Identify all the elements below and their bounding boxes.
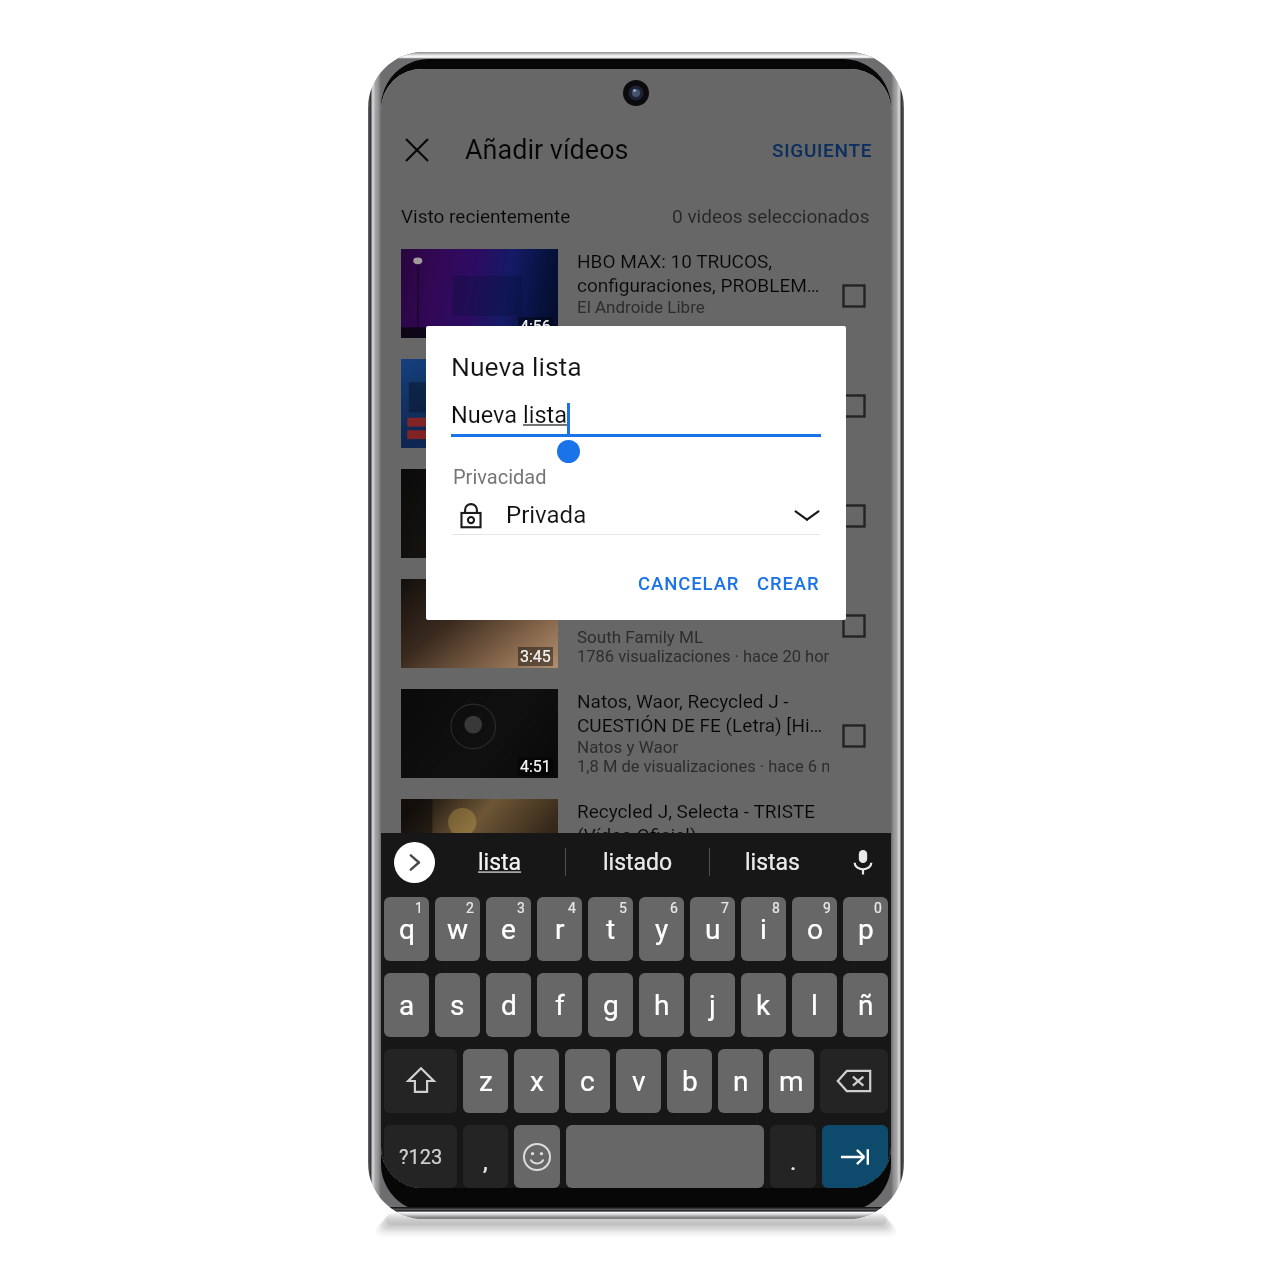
button[interactable]: s — [435, 973, 480, 1037]
button[interactable]: y — [639, 897, 684, 961]
button[interactable]: Seleccionar vídeo — [837, 609, 871, 643]
button[interactable]: a — [384, 973, 429, 1037]
button[interactable]: u — [690, 897, 735, 961]
staticText: 4 — [568, 900, 576, 916]
button[interactable]: o — [792, 897, 837, 961]
button[interactable]: b — [667, 1049, 712, 1113]
staticText: x — [530, 1065, 544, 1098]
staticText: 1,8 M de visualizaciones · hace 6 m — [577, 757, 829, 776]
staticText: 4:56 — [520, 317, 551, 336]
button[interactable]: Cerrar — [396, 129, 438, 171]
button[interactable]: ​ ​ — [381, 574, 891, 684]
button[interactable]: HBO MAX: 10 TRUCOS, configuraciones, PRO… — [381, 244, 891, 354]
button[interactable]: j — [690, 973, 735, 1037]
button[interactable]: Seleccionar vídeo — [381, 464, 891, 574]
button[interactable]: t — [588, 897, 633, 961]
button[interactable]: lista — [435, 833, 565, 891]
staticText: r — [555, 913, 565, 946]
button[interactable]: Seleccionar vídeo — [837, 719, 871, 753]
button[interactable]: z — [463, 1049, 508, 1113]
button[interactable]: Más sugerencias — [394, 842, 435, 883]
staticText: 4:51 — [520, 757, 551, 776]
button[interactable]: ?123 — [384, 1125, 457, 1188]
staticText: CANCELAR — [638, 573, 740, 595]
staticText: Visto recientemente — [401, 205, 571, 227]
button[interactable]: 4:56 — [381, 244, 891, 354]
button[interactable]: Seleccionar vídeo — [381, 794, 891, 904]
staticText: listado — [603, 849, 673, 876]
staticText: Privacidad — [453, 465, 547, 488]
button[interactable]: Seleccionar vídeo — [837, 609, 871, 643]
staticText: ñ — [858, 989, 874, 1022]
staticText: a — [399, 989, 415, 1022]
staticText: lista — [478, 849, 522, 876]
staticText: l — [811, 989, 818, 1022]
staticText: o — [807, 913, 823, 946]
button[interactable]: Mayúsculas — [384, 1049, 457, 1113]
staticText: Nueva lista — [451, 351, 582, 382]
button[interactable]: h — [639, 973, 684, 1037]
staticText: 1786 visualizaciones · hace 20 hora — [577, 647, 829, 666]
button[interactable]: f — [537, 973, 582, 1037]
button[interactable]: e — [486, 897, 531, 961]
staticText: m — [779, 1065, 804, 1098]
staticText: listas — [745, 849, 800, 876]
button[interactable]: Coma — [463, 1125, 508, 1188]
button[interactable]: ñ — [843, 973, 888, 1037]
button[interactable]: Seleccionar vídeo — [837, 499, 871, 533]
button[interactable]: Punto — [770, 1125, 816, 1188]
button[interactable]: Seleccionar vídeo — [837, 829, 871, 863]
button[interactable]: Seleccionar vídeo — [837, 719, 871, 753]
button[interactable]: Seleccionar vídeo — [837, 279, 871, 313]
staticText: b — [682, 1065, 698, 1098]
button[interactable]: Seleccionar vídeo — [837, 499, 871, 533]
button[interactable]: Buscar por voz — [835, 833, 891, 891]
staticText: 6 — [670, 900, 678, 916]
button[interactable]: d — [486, 973, 531, 1037]
button[interactable]: Borrar — [820, 1049, 888, 1113]
button[interactable]: x — [514, 1049, 559, 1113]
staticText: d — [501, 989, 517, 1022]
button[interactable]: 3:45 — [381, 574, 891, 684]
staticText: Recycled J, Selecta - TRISTE (Vídeo Ofic… — [577, 800, 816, 847]
staticText: h — [654, 989, 670, 1022]
staticText: e — [501, 913, 516, 946]
button[interactable]: CREAR — [749, 563, 828, 605]
staticText: Privada — [506, 501, 587, 529]
button[interactable]: m — [769, 1049, 814, 1113]
button[interactable]: Intro — [822, 1125, 888, 1188]
staticText: n — [733, 1065, 749, 1098]
button[interactable]: listas — [710, 833, 835, 891]
button[interactable]: Privada — [426, 492, 846, 538]
button[interactable]: Recycled J, Selecta - TRISTE (Vídeo Ofic… — [381, 794, 891, 904]
button[interactable]: Espacio — [566, 1125, 764, 1188]
button[interactable]: Natos, Waor, Recycled J - CUESTIÓN DE FE… — [381, 684, 891, 794]
button[interactable]: Emoji — [514, 1125, 560, 1188]
button[interactable]: Seleccionar vídeo — [381, 354, 891, 464]
button[interactable]: Seleccionar vídeo — [837, 279, 871, 313]
button[interactable]: n — [718, 1049, 763, 1113]
button[interactable]: 4:51 — [381, 684, 891, 794]
button[interactable]: Seleccionar vídeo — [837, 389, 871, 423]
button[interactable]: listado — [566, 833, 709, 891]
button[interactable]: Seleccionar vídeo — [837, 389, 871, 423]
button[interactable]: q — [384, 897, 429, 961]
button[interactable]: Seleccionar vídeo — [837, 829, 871, 863]
button[interactable]: i — [741, 897, 786, 961]
button[interactable]: CANCELAR — [629, 561, 749, 607]
button[interactable]: k — [741, 973, 786, 1037]
button[interactable]: g — [588, 973, 633, 1037]
button[interactable]: c — [565, 1049, 610, 1113]
button[interactable]: SIGUIENTE — [770, 129, 875, 171]
button[interactable]: Seleccionar vídeo — [381, 354, 891, 464]
button[interactable]: v — [616, 1049, 661, 1113]
button[interactable]: r — [537, 897, 582, 961]
staticText: Natos, Waor, Recycled J - CUESTIÓN DE FE… — [577, 690, 823, 737]
staticText: t — [606, 913, 616, 946]
button[interactable]: w — [435, 897, 480, 961]
button[interactable]: Seleccionar vídeo — [381, 464, 891, 574]
button[interactable]: l — [792, 973, 837, 1037]
button[interactable]: p — [843, 897, 888, 961]
staticText: i — [760, 913, 767, 946]
staticText: 5 — [619, 900, 627, 916]
